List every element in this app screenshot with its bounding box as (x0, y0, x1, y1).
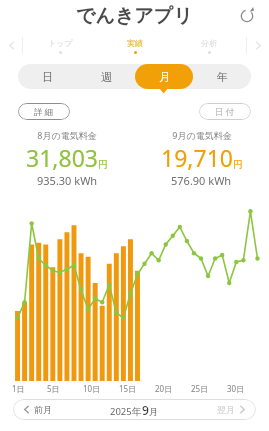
staticText: 15日 (119, 383, 137, 394)
staticText: 年 (217, 70, 228, 84)
button[interactable]: Next page (247, 32, 269, 59)
staticText: 円 (98, 158, 108, 171)
staticText: 翌月 (217, 404, 235, 415)
button[interactable]: 日 (18, 64, 77, 89)
staticText: 576.90 kWh (171, 173, 232, 188)
button[interactable]: 翌月 (217, 399, 247, 420)
staticText: 9 (142, 402, 149, 418)
staticText: 25日 (191, 383, 209, 394)
staticText: 月 (149, 406, 159, 418)
staticText: トップ (48, 38, 73, 48)
staticText: 31,803 (26, 142, 98, 173)
button[interactable]: 分析 (172, 32, 246, 59)
staticText: 30日 (227, 383, 245, 394)
staticText: 詳 細 (34, 106, 54, 118)
staticText: 分析 (201, 38, 217, 48)
button[interactable]: 月 (135, 64, 193, 89)
button[interactable]: 詳 細 (18, 103, 70, 120)
staticText: 10日 (83, 383, 101, 394)
button[interactable]: 実績 (98, 32, 172, 59)
staticText: 週 (101, 70, 112, 84)
button[interactable]: 年 (193, 64, 251, 89)
staticText: 月 (159, 70, 170, 84)
staticText: 実績 (127, 38, 143, 48)
staticText: 9月の電気料金 (172, 129, 232, 141)
button[interactable]: 前月 (22, 399, 52, 420)
button[interactable]: 週 (77, 64, 135, 89)
button[interactable]: 日 付 (199, 103, 251, 120)
staticText: 2025年 (110, 405, 142, 418)
button[interactable]: トップ (23, 32, 98, 59)
staticText: 20日 (155, 383, 173, 394)
staticText: 8月の電気料金 (37, 129, 97, 141)
staticText: 日 付 (215, 106, 235, 118)
staticText: 935.30 kWh (37, 173, 98, 188)
staticText: 前月 (34, 404, 52, 415)
staticText: でんきアプリ (76, 4, 193, 28)
staticText: 1日 (12, 383, 25, 394)
button[interactable]: Previous page (0, 32, 22, 59)
staticText: 5日 (47, 383, 60, 394)
staticText: 日 (42, 70, 53, 84)
staticText: 19,710 (161, 142, 233, 173)
button[interactable]: Refresh (236, 5, 258, 27)
staticText: 円 (233, 158, 243, 171)
